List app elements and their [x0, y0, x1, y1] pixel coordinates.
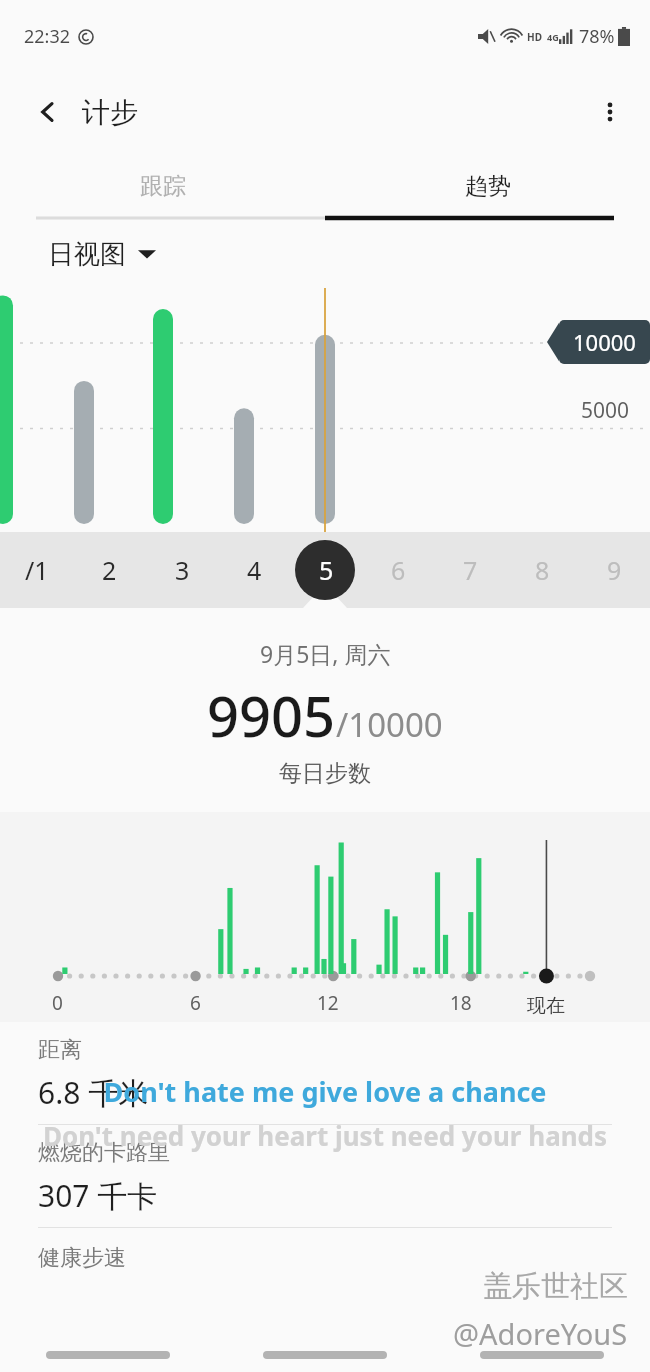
staticText: 0 — [52, 990, 63, 1016]
button[interactable]: 2 — [73, 532, 146, 608]
staticText: 盖乐世社区 — [483, 1268, 628, 1305]
button[interactable]: 趋势 — [325, 152, 650, 220]
staticText: 5000 — [581, 396, 630, 425]
button[interactable]: Back — [433, 1338, 650, 1372]
button[interactable]: 健康步速 — [0, 1228, 650, 1278]
staticText: 3 — [175, 553, 190, 587]
staticText: @AdoreYouS — [453, 1314, 628, 1353]
staticText: 每日步数 — [279, 759, 371, 788]
staticText: 趋势 — [465, 172, 511, 201]
button[interactable]: 7 — [434, 532, 506, 608]
staticText: Don't need your heart just need your han… — [0, 1118, 650, 1153]
staticText: 78% — [579, 24, 615, 49]
button[interactable]: More options — [586, 88, 634, 136]
staticText: 6 — [391, 553, 406, 587]
staticText: 307 千卡 — [38, 1175, 158, 1216]
staticText: 5 — [319, 553, 334, 587]
button[interactable]: 燃烧的卡路里 — [0, 1125, 650, 1227]
staticText: 燃烧的卡路里 — [38, 1139, 170, 1167]
staticText: 12 — [317, 990, 339, 1016]
button[interactable]: 4 — [218, 532, 290, 608]
button[interactable]: 日视图 — [48, 220, 650, 288]
staticText: 9905 — [207, 677, 336, 753]
button[interactable]: 跟踪 — [0, 152, 325, 220]
staticText: 健康步速 — [38, 1244, 126, 1272]
button[interactable]: 9 — [578, 532, 650, 608]
staticText: 计步 — [82, 95, 138, 130]
staticText: 日视图 — [48, 238, 126, 271]
staticText: 7 — [463, 553, 478, 587]
button[interactable]: 6 — [362, 532, 434, 608]
staticText: 10000 — [573, 327, 636, 357]
staticText: HD — [527, 30, 542, 44]
staticText: Don't hate me give love a chance — [0, 1073, 650, 1110]
staticText: /10000 — [336, 702, 443, 747]
staticText: 22:32 — [24, 24, 71, 49]
button[interactable]: Back — [26, 90, 70, 134]
staticText: 跟踪 — [140, 172, 186, 201]
button[interactable]: /1 — [0, 532, 73, 608]
staticText: 6.8 千米 — [38, 1072, 149, 1113]
button[interactable]: 8 — [506, 532, 578, 608]
staticText: 距离 — [38, 1036, 82, 1064]
staticText: 4 — [247, 553, 262, 587]
button[interactable]: 3 — [146, 532, 218, 608]
staticText: 现在 — [527, 994, 565, 1018]
staticText: 2 — [102, 553, 117, 587]
button[interactable]: Home — [216, 1338, 433, 1372]
staticText: 8 — [535, 553, 550, 587]
button[interactable]: 5 — [290, 532, 362, 608]
staticText: 9 — [607, 553, 622, 587]
staticText: 6 — [190, 990, 201, 1016]
staticText: 18 — [450, 990, 472, 1016]
staticText: 9月5日, 周六 — [260, 638, 391, 669]
button[interactable]: 距离 — [0, 1022, 650, 1124]
button[interactable]: Recents — [0, 1338, 216, 1372]
staticText: /1 — [25, 553, 49, 587]
staticText: 4G — [547, 31, 559, 43]
